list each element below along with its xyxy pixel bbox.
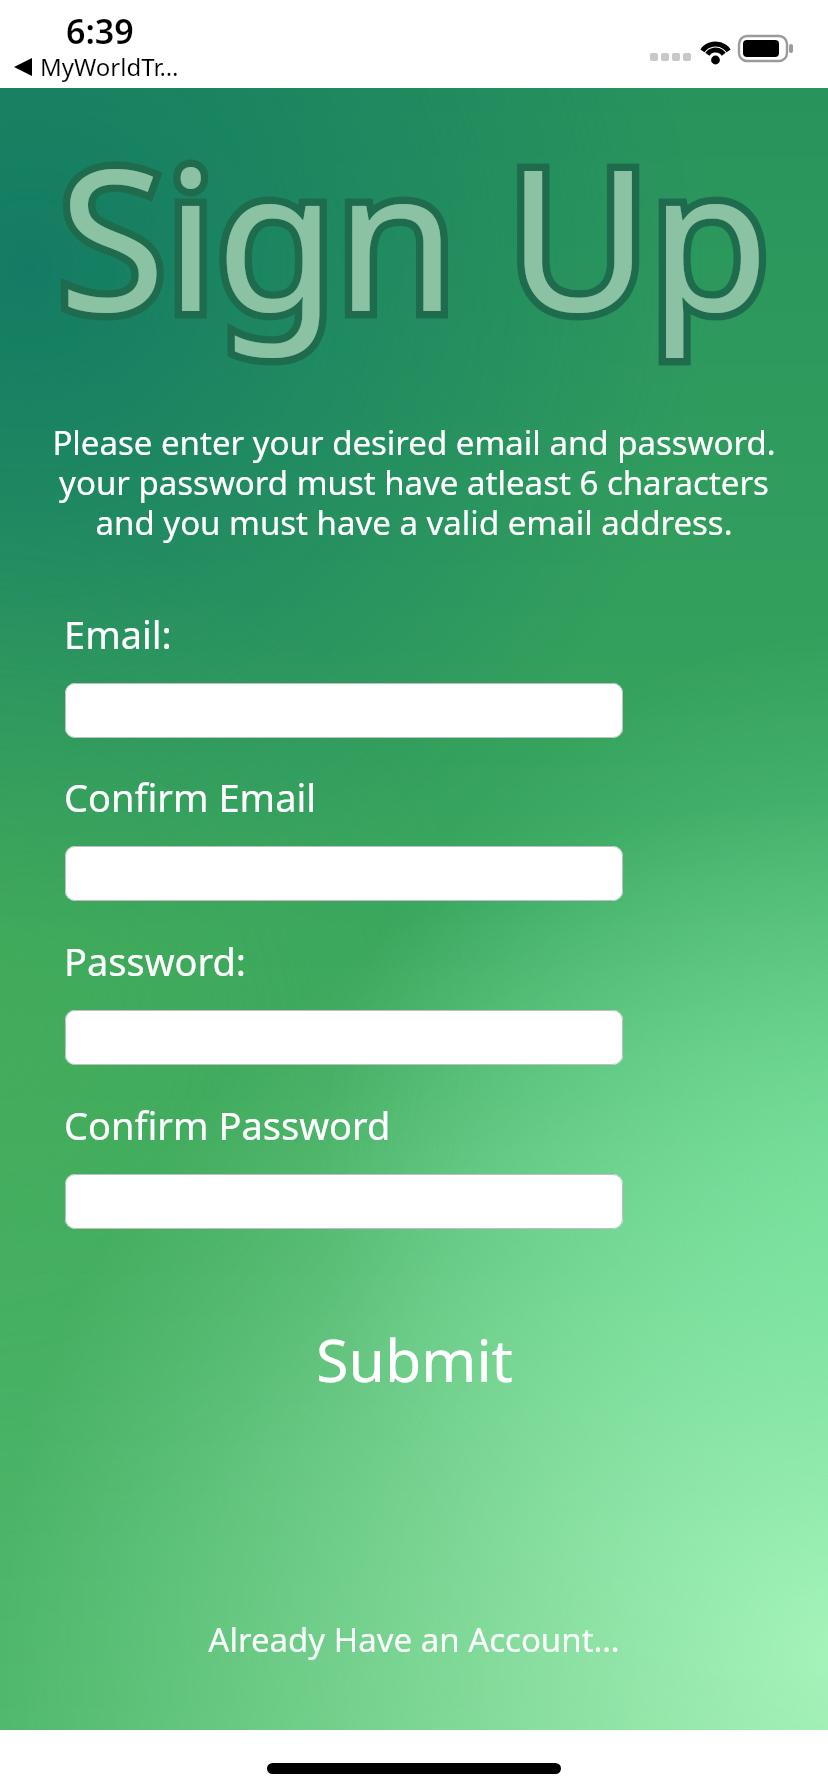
staticText: Sign Up [0,103,828,369]
staticText: Sign Up [0,103,828,369]
button[interactable]: Submit [316,1319,513,1399]
staticText: 6:39 [66,8,134,54]
staticText: Please enter your desired email and pass… [0,420,828,545]
staticText: Email: [64,608,172,660]
button[interactable]: Already Have an Account… [208,1617,620,1662]
button[interactable] [65,1174,623,1229]
staticText: MyWorldTr… [40,50,179,83]
staticText: Submit [316,1319,513,1399]
button[interactable]: MyWorldTr… [14,50,179,83]
staticText: Confirm Password [64,1099,391,1151]
button[interactable] [65,846,623,901]
staticText: Confirm Email [64,771,317,823]
button[interactable] [65,1010,623,1065]
button[interactable] [65,683,623,738]
staticText: Password: [64,935,247,987]
staticText: Already Have an Account… [208,1617,620,1662]
